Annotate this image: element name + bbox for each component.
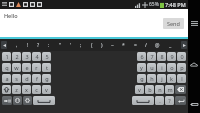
button[interactable]: /: [145, 39, 147, 51]
button[interactable]: m: [165, 85, 174, 94]
button[interactable]: z: [12, 85, 21, 94]
staticText: 7: [150, 53, 154, 60]
button[interactable]: @: [155, 39, 160, 51]
staticText: v: [138, 86, 141, 93]
button[interactable]: 2: [12, 52, 21, 61]
staticText: u: [150, 64, 154, 71]
staticText: ": [59, 42, 62, 49]
button[interactable]: d: [22, 74, 31, 83]
staticText: x: [25, 86, 28, 93]
button[interactable]: t: [42, 63, 51, 72]
button[interactable]: g: [42, 74, 51, 83]
button[interactable]: 6: [137, 52, 146, 61]
button[interactable]: o: [167, 63, 176, 72]
staticText: ~: [111, 42, 114, 49]
staticText: g: [140, 75, 144, 82]
button[interactable]: 3: [22, 52, 31, 61]
button[interactable]: ): [101, 39, 103, 51]
staticText: 5: [45, 53, 49, 60]
button[interactable]: Space: [132, 96, 154, 105]
button[interactable]: Enter: [175, 96, 186, 105]
staticText: :: [48, 42, 50, 49]
staticText: ): [101, 42, 103, 49]
button[interactable]: k: [167, 74, 176, 83]
staticText: w: [14, 64, 19, 71]
button[interactable]: Next: [180, 39, 188, 51]
staticText: _: [169, 42, 172, 49]
button[interactable]: _: [169, 39, 172, 51]
staticText: ,: [16, 42, 18, 49]
staticText: q: [5, 64, 9, 71]
button[interactable]: Menu: [188, 17, 200, 29]
staticText: 1: [5, 53, 9, 60]
button[interactable]: (: [91, 39, 93, 51]
button[interactable]: 8: [157, 52, 166, 61]
button[interactable]: a: [2, 74, 11, 83]
button[interactable]: i: [157, 63, 166, 72]
button[interactable]: w: [12, 63, 21, 72]
staticText: n: [158, 86, 162, 93]
button[interactable]: 7: [147, 52, 156, 61]
button[interactable]: y: [137, 63, 146, 72]
button[interactable]: l: [177, 74, 186, 83]
button[interactable]: ~: [111, 39, 114, 51]
button[interactable]: *: [122, 39, 125, 51]
button[interactable]: c: [32, 85, 41, 94]
button[interactable]: b: [145, 85, 154, 94]
staticText: c: [35, 86, 38, 93]
button[interactable]: 1: [2, 52, 11, 61]
staticText: 2: [15, 53, 19, 60]
button[interactable]: :: [48, 39, 50, 51]
button[interactable]: Symbols: [2, 96, 12, 105]
button[interactable]: x: [22, 85, 31, 94]
button[interactable]: =: [134, 39, 137, 51]
button[interactable]: f: [32, 74, 41, 83]
staticText: r: [35, 64, 38, 71]
button[interactable]: p: [177, 63, 186, 72]
button[interactable]: ": [59, 39, 62, 51]
button[interactable]: h: [147, 74, 156, 83]
button[interactable]: q: [2, 63, 11, 72]
button[interactable]: Backspace: [175, 85, 186, 94]
staticText: ?: [168, 97, 171, 104]
button[interactable]: Send: [163, 18, 184, 29]
button[interactable]: [2, 85, 11, 94]
button[interactable]: ?: [165, 96, 174, 105]
staticText: y: [140, 64, 143, 71]
button[interactable]: ;: [80, 39, 82, 51]
button[interactable]: Previous: [0, 39, 8, 51]
button[interactable]: r: [32, 63, 41, 72]
button[interactable]: !: [27, 39, 29, 51]
staticText: 4: [35, 53, 39, 60]
staticText: (: [91, 42, 93, 49]
staticText: 3: [25, 53, 29, 60]
button[interactable]: Back: [188, 98, 200, 110]
staticText: /: [145, 42, 147, 49]
button[interactable]: Settings: [23, 96, 32, 105]
button[interactable]: Space: [33, 96, 55, 105]
button[interactable]: ': [70, 39, 72, 51]
staticText: 8: [160, 53, 164, 60]
button[interactable]: ,: [16, 39, 18, 51]
staticText: g: [45, 75, 49, 82]
button[interactable]: v: [135, 85, 144, 94]
button[interactable]: ?: [37, 39, 40, 51]
button[interactable]: 5: [42, 52, 51, 61]
staticText: *: [122, 42, 125, 49]
staticText: @: [155, 42, 160, 49]
button[interactable]: u: [147, 63, 156, 72]
button[interactable]: g: [137, 74, 146, 83]
button[interactable]: 0: [177, 52, 186, 61]
button[interactable]: Home: [188, 58, 200, 70]
button[interactable]: s: [12, 74, 21, 83]
button[interactable]: .: [155, 96, 164, 105]
button[interactable]: j: [157, 74, 166, 83]
button[interactable]: n: [155, 85, 164, 94]
staticText: a: [5, 75, 9, 82]
button[interactable]: e: [22, 63, 31, 72]
staticText: =: [134, 42, 137, 49]
button[interactable]: Emoji: [13, 96, 22, 105]
button[interactable]: 9: [167, 52, 176, 61]
button[interactable]: v: [42, 85, 51, 94]
button[interactable]: 4: [32, 52, 41, 61]
